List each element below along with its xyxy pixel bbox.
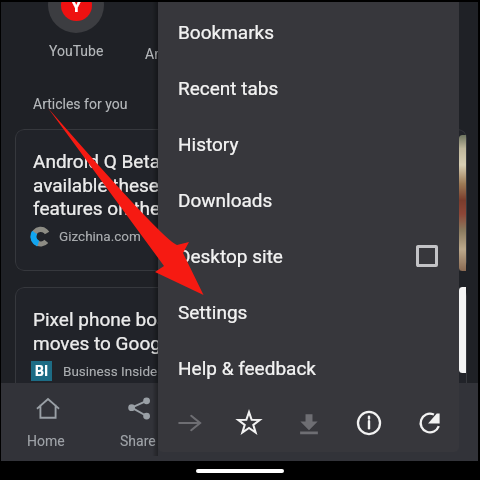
button[interactable]: Share xyxy=(93,383,183,461)
staticText: Downloads xyxy=(178,189,273,211)
other xyxy=(220,398,242,420)
button[interactable] xyxy=(276,383,366,461)
button[interactable]: Downloads xyxy=(158,172,459,228)
staticText: Gizchina.com xyxy=(59,228,141,244)
staticText: Amazon xyxy=(145,46,197,62)
button[interactable]: Download xyxy=(284,398,334,448)
staticText: Help & feedback xyxy=(178,357,316,379)
staticText: Articles for you xyxy=(33,96,128,112)
staticText: Business Insider xyxy=(63,363,162,379)
button[interactable]: Bookmark xyxy=(224,398,274,448)
staticText: Desktop site xyxy=(178,245,283,267)
other xyxy=(403,398,425,420)
staticText: features on the xyxy=(33,197,161,219)
staticText: YouTube xyxy=(49,43,104,59)
button[interactable] xyxy=(367,383,457,461)
staticText: History xyxy=(178,133,239,155)
staticText: Settings xyxy=(178,301,248,323)
button[interactable]: Android Q Beta is xyxy=(15,129,467,271)
staticText: Home xyxy=(27,433,65,449)
button[interactable]: Recent tabs xyxy=(158,60,459,116)
button[interactable]: Help & feedback xyxy=(158,340,459,396)
button[interactable]: Desktop site xyxy=(158,228,459,284)
button[interactable]: Bookmarks xyxy=(158,4,459,60)
button[interactable]: Pixel phone boss xyxy=(15,287,467,429)
staticText: Y xyxy=(71,0,82,16)
staticText: Android Q Beta is xyxy=(33,150,180,172)
button[interactable]: Page info xyxy=(344,398,394,448)
button[interactable] xyxy=(184,383,274,461)
staticText: moves to Google xyxy=(33,332,176,354)
button[interactable]: Forward xyxy=(165,398,215,448)
staticText: Recent tabs xyxy=(178,77,279,99)
other: Share xyxy=(129,398,151,420)
button[interactable]: Settings xyxy=(158,284,459,340)
staticText: Pixel phone boss xyxy=(33,308,177,330)
staticText: BI xyxy=(35,363,49,379)
other: Home xyxy=(37,398,59,420)
button[interactable]: Reload xyxy=(405,398,455,448)
staticText: Bookmarks xyxy=(178,21,275,43)
staticText: Share xyxy=(120,433,156,449)
button[interactable]: History xyxy=(158,116,459,172)
button[interactable]: Home xyxy=(1,383,91,461)
staticText: available these new xyxy=(33,174,199,196)
